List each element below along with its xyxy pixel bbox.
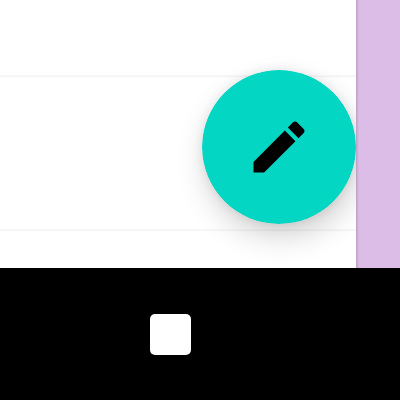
button[interactable]: Side panel <box>356 0 400 268</box>
button[interactable] <box>0 0 400 75</box>
button[interactable] <box>0 229 400 268</box>
button[interactable]: Compose new note <box>202 70 356 224</box>
button[interactable]: Home <box>150 314 191 355</box>
button[interactable] <box>0 75 400 229</box>
